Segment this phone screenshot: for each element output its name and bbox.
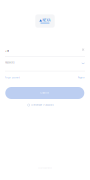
staticText: NEXA [43, 19, 51, 22]
button[interactable]: Clear [81, 47, 86, 52]
staticText: Password [5, 61, 14, 64]
staticText: Forgot password [5, 76, 20, 79]
button[interactable]: Show password [81, 61, 86, 66]
staticText: +91 [5, 50, 9, 52]
button[interactable]: Remember Password [28, 104, 53, 106]
staticText: Remember Password [31, 104, 53, 106]
staticText: Register [78, 76, 85, 79]
button[interactable]: Register [78, 76, 85, 79]
button[interactable]: Forgot password [5, 76, 20, 79]
staticText: Confirm [40, 92, 49, 94]
button[interactable]: Confirm [5, 87, 84, 99]
